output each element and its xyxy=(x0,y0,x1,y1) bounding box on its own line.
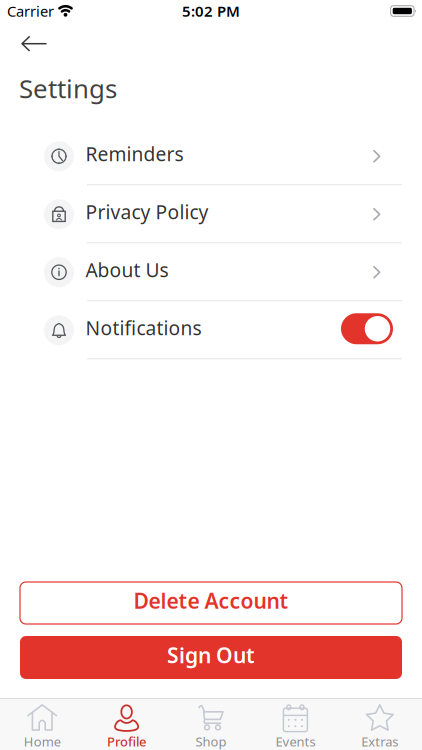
button[interactable]: Notifications xyxy=(0,301,422,359)
staticText: 5:02 PM xyxy=(182,1,240,21)
button[interactable]: Back xyxy=(0,36,47,52)
staticText: Sign Out xyxy=(167,641,255,669)
staticText: Reminders xyxy=(85,141,183,166)
button[interactable]: About Us xyxy=(0,243,422,301)
button[interactable]: Delete Account xyxy=(0,582,422,624)
staticText: Profile xyxy=(107,733,146,750)
staticText: Extras xyxy=(361,733,398,750)
staticText: Events xyxy=(275,733,315,750)
button[interactable]: Sign Out xyxy=(0,636,422,679)
button[interactable]: Home xyxy=(0,704,84,750)
button[interactable]: Privacy Policy xyxy=(0,185,422,243)
staticText: Home xyxy=(24,733,61,750)
staticText: Settings xyxy=(19,71,117,105)
button[interactable]: Profile xyxy=(84,704,169,750)
button[interactable]: Reminders xyxy=(0,127,422,185)
staticText: Shop xyxy=(195,733,226,750)
button[interactable]: Shop xyxy=(169,704,253,750)
button[interactable]: Extras xyxy=(338,704,422,750)
staticText: Privacy Policy xyxy=(85,199,208,224)
button[interactable]: Events xyxy=(253,704,338,750)
staticText: Delete Account xyxy=(133,586,288,614)
staticText: Carrier xyxy=(7,1,54,21)
staticText: About Us xyxy=(85,257,168,282)
staticText: Notifications xyxy=(85,315,201,340)
